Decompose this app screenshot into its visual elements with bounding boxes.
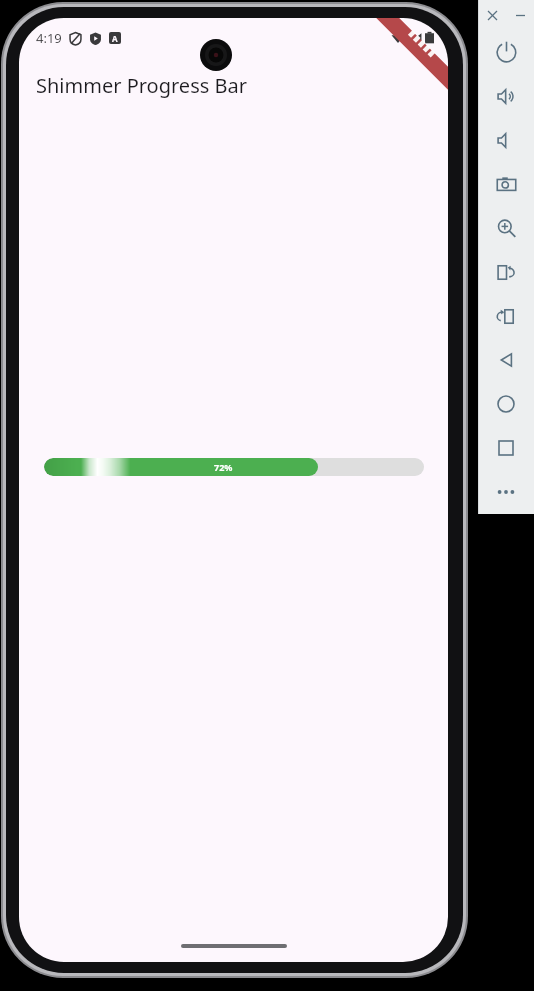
button[interactable]: Minimize	[506, 0, 534, 30]
button[interactable]: More	[478, 470, 534, 514]
staticText: 72%	[214, 461, 233, 473]
button[interactable]: Zoom	[478, 206, 534, 250]
button[interactable]: Power	[478, 30, 534, 74]
button[interactable]: Rotate left	[478, 250, 534, 294]
button[interactable]: Volume up	[478, 74, 534, 118]
button[interactable]: Rotate right	[478, 294, 534, 338]
button[interactable]: Home	[478, 382, 534, 426]
staticText: A	[112, 33, 118, 44]
staticText: 4:19	[36, 29, 62, 47]
staticText: Shimmer Progress Bar	[36, 72, 247, 99]
button[interactable]: 72%	[44, 458, 424, 476]
button[interactable]: Volume down	[478, 118, 534, 162]
button[interactable]: Back	[478, 338, 534, 382]
button[interactable]: Overview	[478, 426, 534, 470]
button[interactable]: Close	[478, 0, 506, 30]
button[interactable]: Take screenshot	[478, 162, 534, 206]
